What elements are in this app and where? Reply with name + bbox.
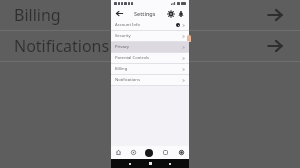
other: Open Billing xyxy=(264,4,286,26)
button[interactable]: Notifications xyxy=(111,75,189,85)
button[interactable]: Account Info xyxy=(111,20,189,30)
button[interactable]: Billing xyxy=(111,64,189,74)
button[interactable]: Security xyxy=(111,31,189,41)
staticText: Settings xyxy=(134,10,156,17)
staticText: Account Info xyxy=(115,22,140,28)
button[interactable]: Notifications xyxy=(0,31,300,61)
staticText: Billing xyxy=(14,4,61,26)
button[interactable]: More xyxy=(173,146,189,159)
button[interactable]: Billing xyxy=(0,0,300,30)
staticText: Security xyxy=(115,33,131,39)
staticText: Billing xyxy=(115,66,128,72)
staticText: Privacy xyxy=(115,44,129,50)
button[interactable]: Search xyxy=(126,146,141,159)
button[interactable]: Profile xyxy=(141,146,157,159)
button[interactable]: Back xyxy=(115,9,124,18)
staticText: Notifications xyxy=(14,35,110,57)
button[interactable]: Library xyxy=(157,146,173,159)
button[interactable]: Privacy xyxy=(111,42,189,52)
staticText: Notifications xyxy=(115,77,140,83)
button[interactable]: Notifications xyxy=(176,9,185,18)
staticText: Parental Controls xyxy=(115,55,150,61)
button[interactable]: Parental Controls xyxy=(111,53,189,63)
button[interactable]: Home xyxy=(111,146,126,159)
other: Open Notifications xyxy=(264,35,286,57)
button[interactable]: Settings xyxy=(166,9,175,18)
